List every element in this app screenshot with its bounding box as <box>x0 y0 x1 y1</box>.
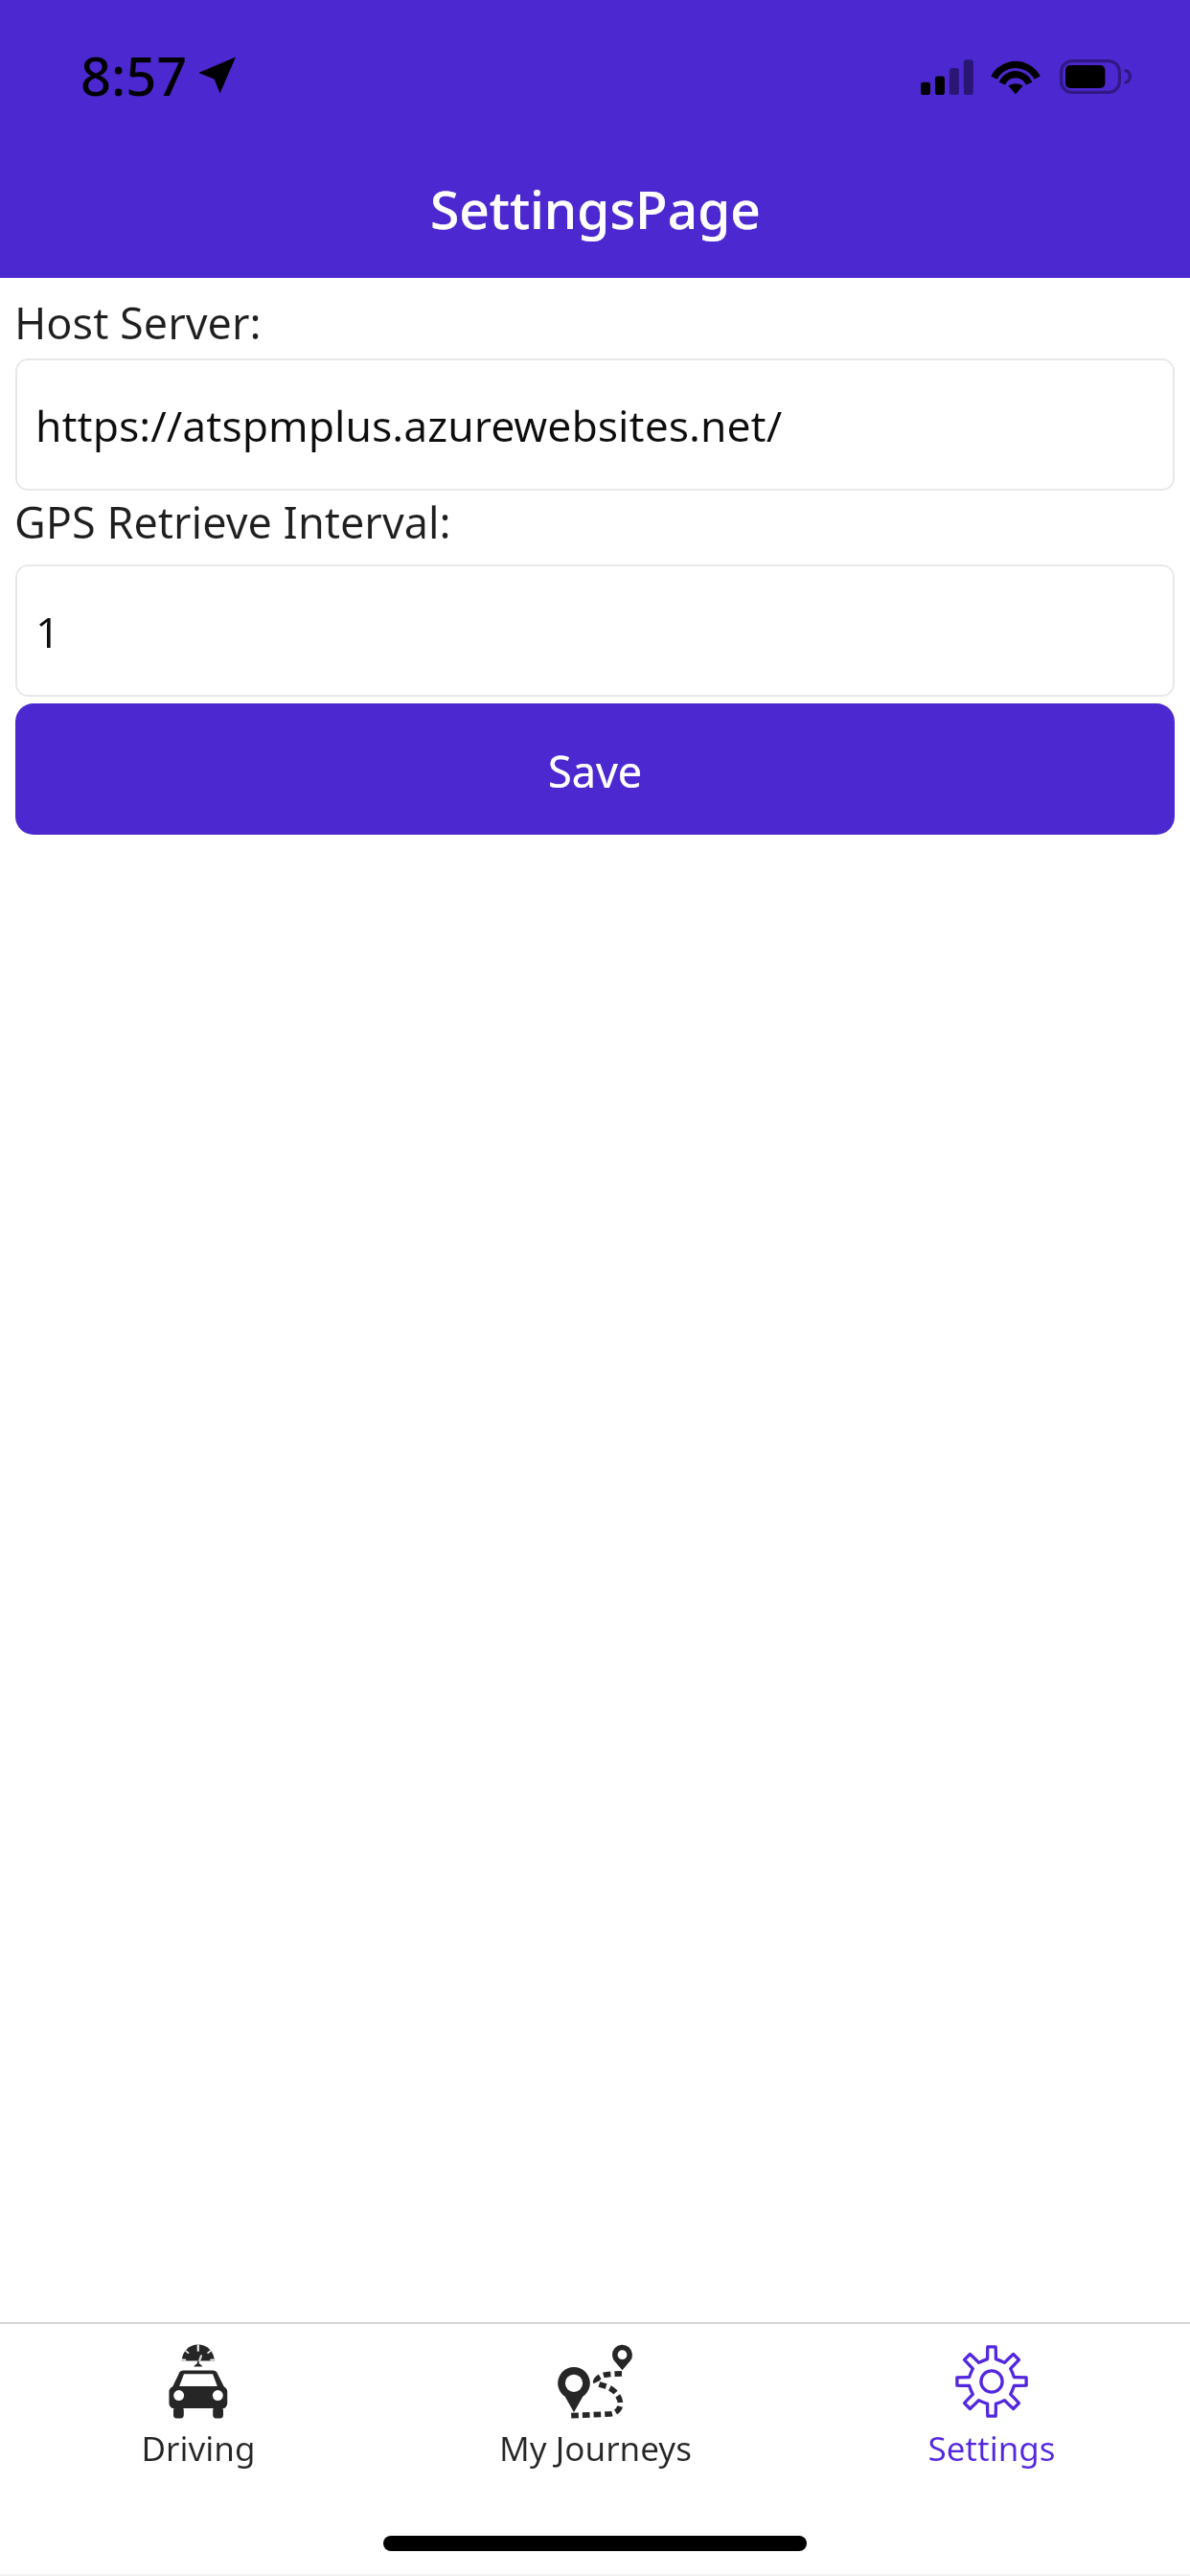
button[interactable]: My Journeys <box>397 2324 793 2472</box>
other: Settings <box>953 2343 1030 2420</box>
other: Driving <box>160 2343 237 2420</box>
button[interactable]: 1 <box>15 564 1175 697</box>
staticText: Settings <box>927 2426 1056 2472</box>
staticText: GPS Retrieve Interval: <box>14 493 451 551</box>
other: My Journeys <box>557 2343 633 2420</box>
button[interactable]: Settings <box>793 2324 1190 2472</box>
staticText: SettingsPage <box>430 172 761 244</box>
staticText: My Journeys <box>499 2426 692 2472</box>
button[interactable]: https://atspmplus.azurewebsites.net/ <box>15 358 1175 491</box>
staticText: Host Server: <box>14 293 262 352</box>
staticText: 8:57 <box>80 38 188 111</box>
staticText: Driving <box>141 2426 256 2472</box>
staticText: 1 <box>35 602 60 660</box>
button[interactable]: Driving <box>0 2324 397 2472</box>
staticText: Save <box>548 742 643 800</box>
button[interactable]: Save <box>15 703 1175 835</box>
staticText: https://atspmplus.azurewebsites.net/ <box>35 396 783 454</box>
